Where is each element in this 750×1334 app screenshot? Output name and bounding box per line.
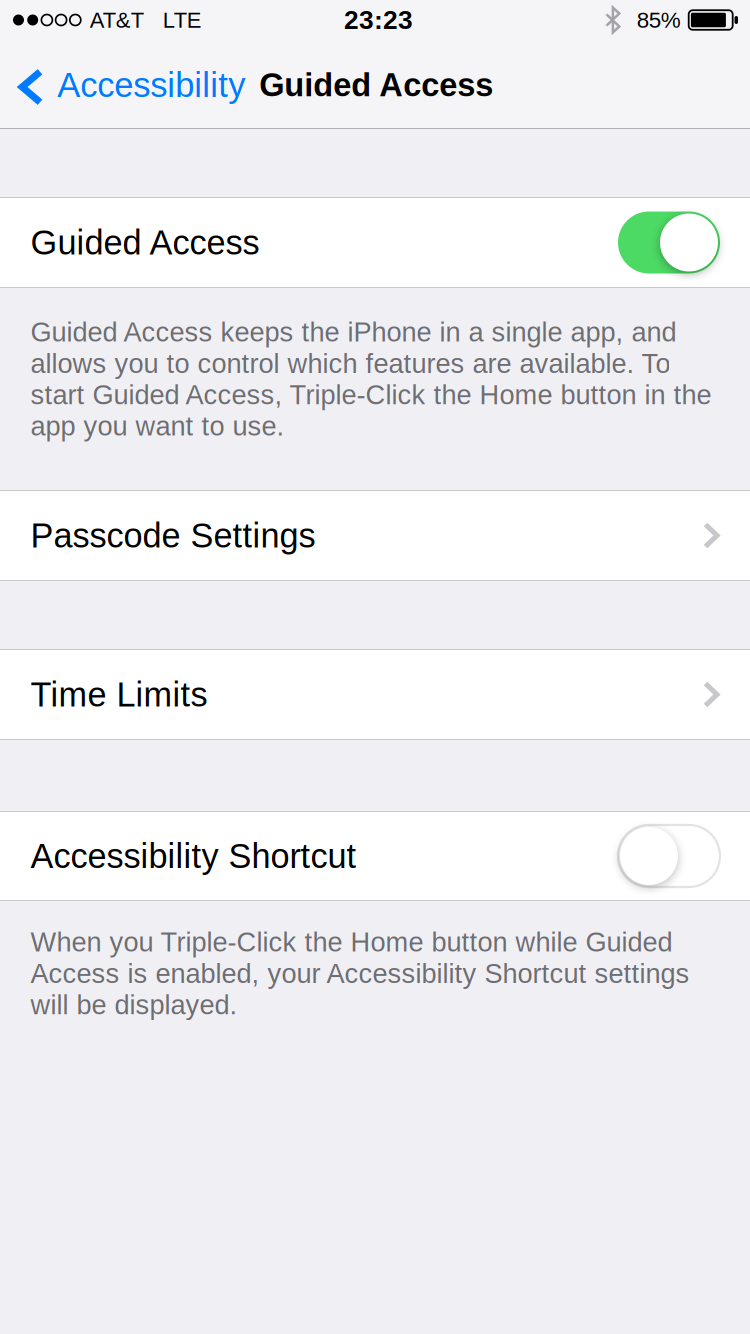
staticText: Guided Access [259, 67, 493, 103]
staticText: 23:23 [344, 5, 413, 35]
button[interactable]: Guided Access [0, 198, 750, 287]
button[interactable]: Accessibility [0, 40, 259, 128]
button[interactable]: Accessibility Shortcut [0, 812, 750, 900]
button[interactable]: Time Limits [0, 650, 750, 739]
staticText: Accessibility [57, 66, 245, 104]
staticText: 85% [637, 7, 681, 32]
staticText: Time Limits [30, 675, 207, 714]
staticText: When you Triple-Click the Home button wh… [30, 927, 689, 1020]
staticText: LTE [163, 8, 202, 32]
staticText: Guided Access [30, 223, 259, 262]
button[interactable]: Passcode Settings [0, 491, 750, 580]
staticText: Guided Access keeps the iPhone in a sing… [30, 317, 711, 441]
staticText: AT&T [90, 8, 144, 32]
staticText: Accessibility Shortcut [30, 837, 356, 875]
staticText: Passcode Settings [30, 516, 315, 555]
